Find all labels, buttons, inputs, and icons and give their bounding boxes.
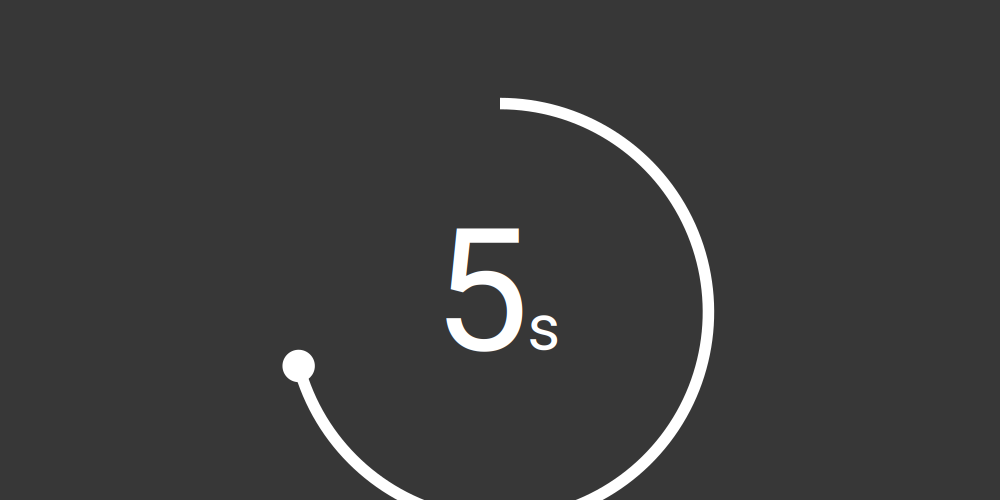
staticText: 5 bbox=[433, 192, 529, 391]
staticText: s bbox=[527, 290, 560, 365]
